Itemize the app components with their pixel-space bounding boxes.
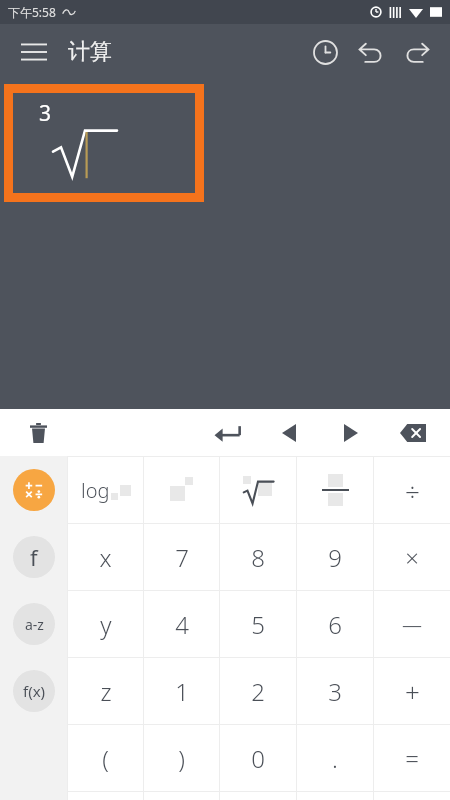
button[interactable]: Move right: [320, 409, 382, 456]
button[interactable]: [297, 457, 373, 523]
button[interactable]: 1: [144, 658, 219, 724]
staticText: ÷: [405, 473, 420, 508]
button[interactable]: 5: [220, 591, 296, 657]
button[interactable]: Enter: [196, 409, 258, 456]
button[interactable]: +: [374, 658, 450, 724]
button[interactable]: Redo: [394, 29, 440, 75]
button[interactable]: 9: [297, 524, 373, 590]
staticText: y: [100, 608, 112, 641]
button[interactable]: ÷: [374, 457, 450, 523]
staticText: f(x): [23, 681, 46, 701]
button[interactable]: 2: [220, 658, 296, 724]
button[interactable]: .: [297, 725, 373, 791]
staticText: 1: [175, 675, 189, 708]
staticText: 5: [251, 608, 265, 641]
button[interactable]: z: [68, 658, 143, 724]
button[interactable]: 4: [144, 591, 219, 657]
button[interactable]: [144, 457, 219, 523]
staticText: 计算: [68, 38, 112, 66]
button[interactable]: =: [374, 725, 450, 791]
button[interactable]: 3: [13, 93, 195, 193]
staticText: (: [102, 742, 109, 775]
button[interactable]: History: [302, 29, 348, 75]
staticText: z: [100, 675, 112, 708]
button[interactable]: x: [68, 524, 143, 590]
staticText: 9: [328, 541, 342, 574]
button[interactable]: ): [144, 725, 219, 791]
button[interactable]: Delete: [16, 411, 60, 455]
button[interactable]: Undo: [348, 29, 394, 75]
staticText: +: [405, 674, 420, 709]
button[interactable]: ×: [374, 524, 450, 590]
staticText: 2: [251, 675, 265, 708]
staticText: a-z: [25, 615, 44, 634]
button[interactable]: [0, 456, 67, 523]
button[interactable]: [220, 457, 296, 523]
button[interactable]: Backspace: [382, 409, 444, 456]
staticText: 3: [39, 99, 52, 128]
button[interactable]: f(x): [0, 657, 67, 724]
button[interactable]: y: [68, 591, 143, 657]
button[interactable]: 6: [297, 591, 373, 657]
staticText: =: [405, 742, 419, 775]
staticText: ): [178, 742, 185, 775]
staticText: 8: [251, 541, 265, 574]
button[interactable]: f: [0, 523, 67, 590]
staticText: 下午5:58: [8, 4, 56, 20]
staticText: f: [30, 542, 38, 572]
button[interactable]: (: [68, 725, 143, 791]
button[interactable]: 8: [220, 524, 296, 590]
button[interactable]: log: [68, 457, 143, 523]
button[interactable]: —: [374, 591, 450, 657]
button[interactable]: 7: [144, 524, 219, 590]
staticText: 0: [251, 742, 265, 775]
staticText: 3: [328, 675, 342, 708]
button[interactable]: 0: [220, 725, 296, 791]
staticText: 4: [175, 608, 189, 641]
button[interactable]: 3: [297, 658, 373, 724]
button[interactable]: a-z: [0, 590, 67, 657]
staticText: 6: [328, 608, 342, 641]
staticText: 7: [175, 541, 189, 574]
staticText: —: [402, 611, 422, 638]
staticText: ×: [405, 541, 419, 574]
staticText: x: [99, 541, 112, 574]
button[interactable]: Menu: [14, 32, 54, 72]
button[interactable]: Move left: [258, 409, 320, 456]
staticText: log: [81, 477, 110, 504]
staticText: .: [332, 742, 338, 775]
